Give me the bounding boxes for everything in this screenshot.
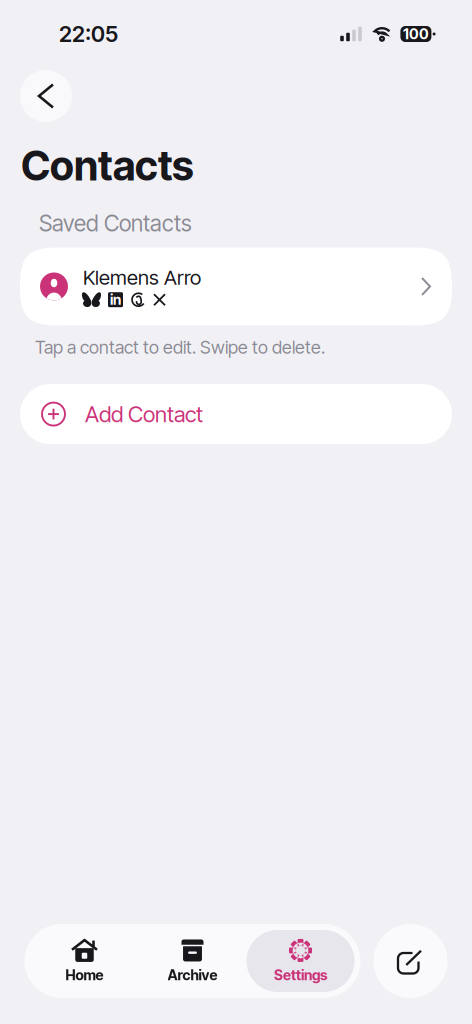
staticText: in [110, 291, 121, 308]
staticText: Add Contact [85, 401, 203, 427]
staticText: Klemens Arro [83, 265, 201, 290]
staticText: 22:05 [59, 21, 118, 47]
staticText: Contacts [21, 141, 194, 190]
staticText: Settings [274, 966, 327, 983]
staticText: Home [65, 966, 103, 983]
staticText: Archive [167, 966, 217, 983]
button[interactable]: Klemens Arro [20, 247, 452, 325]
button[interactable]: Add Contact [20, 384, 452, 444]
button[interactable]: Back [20, 70, 72, 122]
staticText: Saved Contacts [39, 210, 192, 237]
staticText: 100 [403, 25, 429, 43]
button[interactable]: Home [30, 930, 138, 992]
button[interactable]: Archive [138, 930, 246, 992]
button[interactable]: Compose [373, 924, 447, 998]
button[interactable]: Settings [246, 930, 354, 992]
staticText: Tap a contact to edit. Swipe to delete. [35, 336, 325, 358]
